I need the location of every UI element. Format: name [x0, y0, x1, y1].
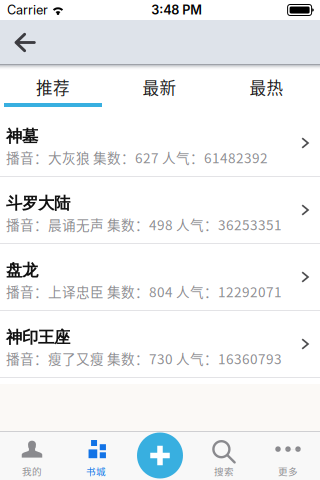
staticText: 书城	[86, 464, 106, 478]
button[interactable]: 最新	[106, 73, 213, 101]
button[interactable]: 我的	[0, 432, 64, 480]
staticText: 我的	[22, 464, 42, 478]
staticText: 神墓	[6, 126, 38, 146]
button[interactable]: 神墓	[0, 110, 320, 177]
button[interactable]: Add	[135, 430, 185, 480]
button[interactable]: 推荐	[0, 73, 106, 101]
button[interactable]: 书城	[64, 432, 128, 480]
staticText: 搜索	[214, 464, 234, 478]
button[interactable]: 神印王座	[0, 311, 320, 378]
button[interactable]: Back	[0, 20, 50, 64]
staticText: 播音：大灰狼 集数：627 人气：61482392	[6, 147, 268, 167]
staticText: 播音：晨诵无声 集数：498 人气：36253351	[6, 214, 282, 234]
staticText: 盘龙	[6, 260, 38, 280]
button[interactable]: 盘龙	[0, 244, 320, 311]
staticText: 更多	[278, 464, 298, 478]
staticText: 推荐	[36, 75, 70, 99]
button[interactable]: 搜索	[192, 432, 256, 480]
staticText: 播音：上译忠臣 集数：804 人气：12292071	[6, 281, 282, 301]
staticText: Carrier	[7, 2, 48, 18]
staticText: 播音：瘦了又瘦 集数：730 人气：16360793	[6, 348, 282, 368]
button[interactable]: 最热	[213, 73, 320, 101]
staticText: 最热	[249, 75, 283, 99]
button[interactable]: 斗罗大陆	[0, 177, 320, 244]
staticText: 斗罗大陆	[6, 193, 70, 213]
button[interactable]: 更多	[256, 432, 320, 480]
staticText: 3:48 PM	[151, 2, 202, 18]
staticText: 神印王座	[6, 327, 70, 347]
staticText: 最新	[142, 75, 176, 99]
